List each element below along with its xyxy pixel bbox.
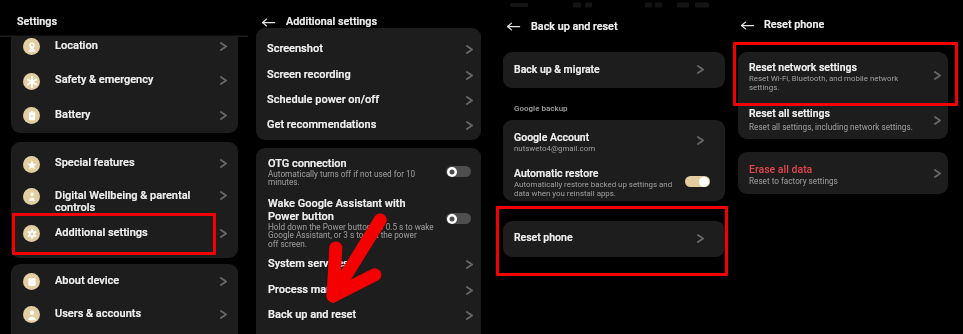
button[interactable]: Location	[11, 32, 238, 62]
button[interactable]: Erase all data	[738, 152, 948, 194]
button[interactable]: Process manager	[256, 278, 481, 303]
staticText: Schedule power on/off	[267, 93, 380, 106]
staticText: Reset Wi-Fi, Bluetooth, and mobile netwo…	[749, 74, 899, 92]
staticText: Battery	[55, 108, 91, 121]
staticText: Google backup	[514, 104, 568, 113]
button[interactable]: System services	[256, 252, 481, 277]
staticText: About device	[55, 274, 120, 287]
button[interactable]: Back up and reset	[256, 304, 481, 329]
button[interactable]: Screenshot	[256, 38, 481, 63]
staticText: System services	[268, 257, 349, 270]
staticText: Automatically turns off if not used for …	[268, 169, 416, 187]
button[interactable]: Schedule power on/off	[256, 89, 481, 114]
staticText: Back up & migrate	[514, 63, 600, 75]
staticText: Digital Wellbeing & parental controls	[55, 189, 191, 214]
staticText: Reset all settings, including network se…	[749, 122, 913, 132]
staticText: Screen recording	[267, 68, 351, 81]
staticText: nutsweto4@gmail.com	[514, 144, 596, 153]
staticText: Reset to factory settings	[749, 176, 838, 186]
button[interactable]: Battery	[11, 101, 238, 131]
button[interactable]: Off	[446, 166, 471, 177]
button[interactable]: Back	[741, 19, 754, 32]
staticText: Google Account	[514, 131, 590, 143]
button[interactable]: Additional settings	[11, 219, 238, 249]
staticText: Get recommendations	[267, 118, 377, 131]
staticText: Special features	[55, 156, 135, 169]
staticText: Screenshot	[267, 42, 323, 55]
staticText: Location	[55, 39, 98, 52]
staticText: Settings	[17, 15, 57, 28]
button[interactable]: Off	[446, 213, 471, 224]
button[interactable]: Digital Wellbeing and parental controls	[11, 182, 238, 212]
staticText: Reset phone	[764, 18, 825, 31]
staticText: Automatically restore backed up settings…	[514, 180, 673, 198]
staticText: Process manager	[268, 283, 355, 296]
button[interactable]: Reset all settings	[738, 104, 948, 139]
staticText: Reset all settings	[749, 107, 830, 119]
button[interactable]: Screen recording	[256, 63, 481, 88]
button[interactable]: Wake Google Assistant with Power button	[256, 194, 481, 246]
staticText: Users & accounts	[55, 307, 142, 320]
staticText: Automatic restore	[514, 167, 599, 179]
button[interactable]: Google Account	[503, 122, 725, 154]
button[interactable]: About device	[11, 266, 238, 296]
staticText: Back up and reset	[268, 308, 357, 321]
button[interactable]: Reset phone	[503, 221, 725, 257]
button[interactable]: Back up and migrate	[503, 52, 725, 88]
button[interactable]: Users and accounts	[11, 300, 238, 330]
button[interactable]: Automatic restore	[503, 160, 725, 200]
staticText: Additional settings	[55, 226, 148, 239]
staticText: Back up and reset	[531, 20, 618, 33]
staticText: Hold down the Power button for 0.5 s to …	[268, 222, 434, 249]
button[interactable]: Reset network settings	[738, 52, 948, 104]
button[interactable]: Special features	[11, 149, 238, 179]
button[interactable]: On	[685, 176, 710, 187]
staticText: Safety & emergency	[55, 73, 154, 86]
staticText: Additional settings	[286, 15, 377, 28]
button[interactable]: Get recommendations	[256, 114, 481, 139]
staticText: Reset network settings	[749, 61, 857, 73]
staticText: OTG connection	[268, 157, 347, 170]
button[interactable]: OTG connection	[256, 150, 481, 188]
button[interactable]: Safety and emergency	[11, 66, 238, 96]
staticText: Wake Google Assistant with Power button	[268, 197, 406, 222]
button[interactable]: Back	[507, 20, 520, 33]
staticText: Reset phone	[514, 231, 573, 243]
staticText: Erase all data	[749, 163, 813, 175]
button[interactable]: Back	[262, 16, 275, 29]
